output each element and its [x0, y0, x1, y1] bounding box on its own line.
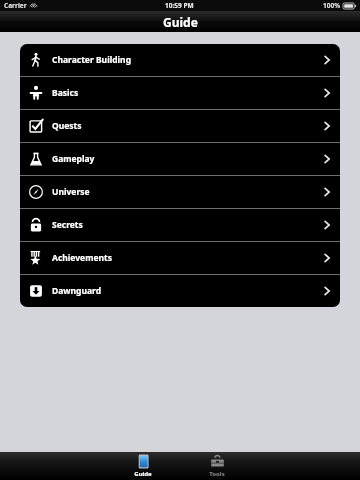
staticText: Carrier: [4, 1, 27, 10]
staticText: Secrets: [52, 219, 83, 231]
staticText: 100%: [323, 1, 341, 10]
button[interactable]: Universe: [20, 176, 340, 208]
button[interactable]: Character Building: [20, 44, 340, 76]
staticText: Universe: [52, 186, 90, 198]
button[interactable]: Gameplay: [20, 143, 340, 175]
button[interactable]: Guide: [117, 452, 169, 480]
button[interactable]: Tools: [191, 452, 243, 480]
button[interactable]: Secrets: [20, 209, 340, 241]
staticText: Quests: [52, 120, 82, 132]
staticText: Dawnguard: [52, 285, 102, 297]
button[interactable]: Dawnguard: [20, 275, 340, 307]
staticText: Character Building: [52, 54, 132, 66]
staticText: Guide: [134, 470, 152, 478]
staticText: 10:59 PM: [165, 1, 194, 10]
button[interactable]: Quests: [20, 110, 340, 142]
staticText: Achievements: [52, 252, 113, 264]
staticText: Basics: [52, 87, 79, 99]
button[interactable]: Achievements: [20, 242, 340, 274]
button[interactable]: Basics: [20, 77, 340, 109]
staticText: Gameplay: [52, 153, 95, 165]
staticText: Tools: [209, 470, 225, 478]
staticText: Guide: [163, 14, 198, 30]
